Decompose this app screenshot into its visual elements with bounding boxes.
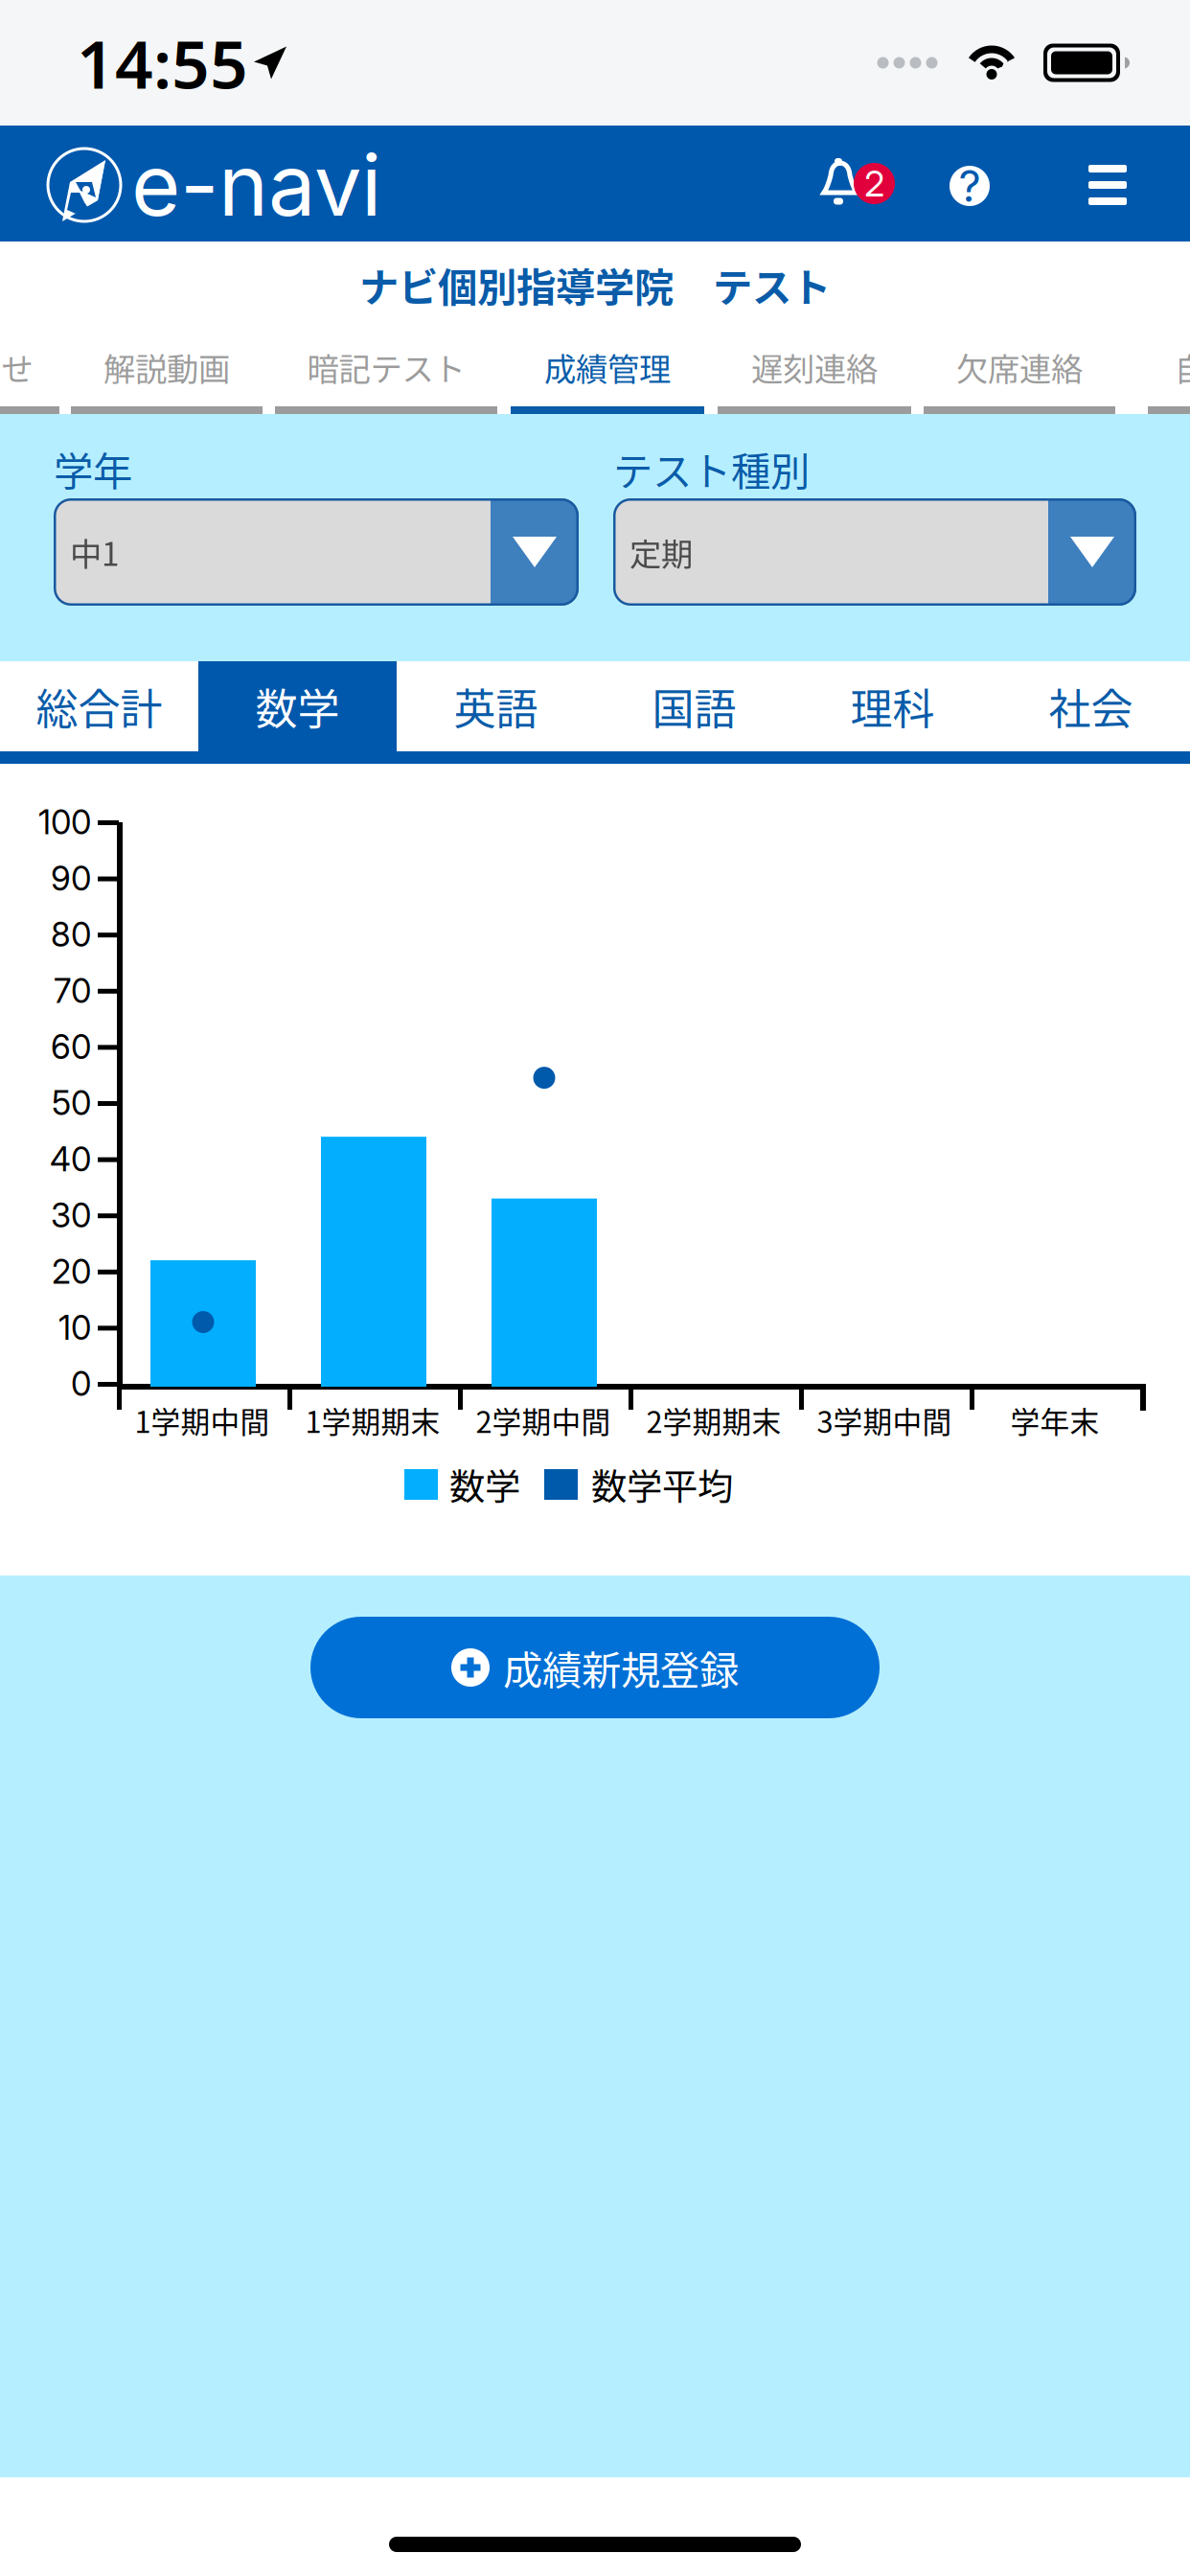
staticText: 数学 — [449, 1459, 520, 1510]
staticText: 30 — [51, 1195, 91, 1235]
button[interactable]: 遅刻連絡 — [718, 328, 911, 406]
button[interactable]: 総合計 — [0, 661, 198, 751]
button[interactable]: e-navi home — [46, 144, 381, 226]
staticText: 暗記テスト — [307, 344, 465, 390]
staticText: 数学 — [255, 676, 340, 737]
staticText: 解説動画 — [103, 344, 230, 390]
staticText: 50 — [52, 1083, 91, 1123]
staticText: 理科 — [850, 676, 935, 737]
staticText: 遅刻連絡 — [751, 344, 878, 390]
staticText: 国語 — [652, 676, 736, 737]
staticText: 0 — [71, 1364, 91, 1404]
staticText: 学年末 — [1010, 1399, 1099, 1442]
button[interactable]: 英語 — [397, 661, 595, 751]
button[interactable]: Menu — [1083, 160, 1133, 210]
button[interactable]: Notifications, 2 unread — [813, 149, 932, 218]
staticText: 定期 — [629, 529, 693, 575]
staticText: 1学期期末 — [305, 1399, 440, 1442]
button[interactable]: 成績新規登録 — [310, 1617, 880, 1718]
staticText: 成績新規登録 — [503, 1639, 739, 1696]
staticText: 成績管理 — [544, 344, 671, 390]
staticText: ? — [959, 160, 981, 212]
staticText: テスト種別 — [613, 440, 810, 497]
staticText: 2学期中間 — [476, 1399, 611, 1442]
staticText: ナビ個別指導学院 テスト — [359, 256, 831, 313]
staticText: 60 — [51, 1027, 91, 1067]
button[interactable]: 欠席連絡 — [924, 328, 1115, 406]
button[interactable]: 数学 — [198, 661, 397, 751]
button[interactable]: せ — [0, 328, 59, 406]
button[interactable]: 中1 — [54, 498, 579, 606]
staticText: 14:55 — [77, 19, 248, 107]
staticText: 中1 — [70, 529, 120, 575]
button[interactable]: 成績管理 — [511, 328, 704, 406]
staticText: 総合計 — [36, 676, 162, 737]
staticText: 3学期中間 — [817, 1399, 952, 1442]
button[interactable]: 定期 — [613, 498, 1136, 606]
staticText: 100 — [38, 802, 91, 842]
staticText: 10 — [58, 1308, 91, 1348]
staticText: 社会 — [1049, 676, 1133, 737]
staticText: 1学期中間 — [135, 1399, 270, 1442]
button[interactable]: 解説動画 — [71, 328, 263, 406]
button[interactable]: 理科 — [793, 661, 992, 751]
button[interactable]: 社会 — [992, 661, 1190, 751]
button[interactable]: Help — [944, 160, 995, 212]
staticText: 80 — [51, 914, 91, 955]
staticText: 欠席連絡 — [956, 344, 1083, 390]
button[interactable]: 暗記テスト — [275, 328, 497, 406]
staticText: 学年 — [54, 440, 132, 497]
button[interactable]: 国語 — [595, 661, 793, 751]
staticText: e-navi — [131, 134, 381, 236]
staticText: 自 — [1174, 344, 1190, 390]
staticText: 英語 — [454, 676, 538, 737]
staticText: 90 — [51, 858, 91, 898]
staticText: 2 — [864, 162, 884, 205]
staticText: せ — [1, 344, 33, 390]
staticText: 数学平均 — [591, 1459, 733, 1510]
button[interactable]: 自 — [1148, 328, 1190, 406]
staticText: 40 — [50, 1139, 91, 1179]
staticText: 70 — [54, 971, 91, 1011]
staticText: 20 — [52, 1251, 91, 1292]
staticText: 2学期期末 — [646, 1399, 781, 1442]
